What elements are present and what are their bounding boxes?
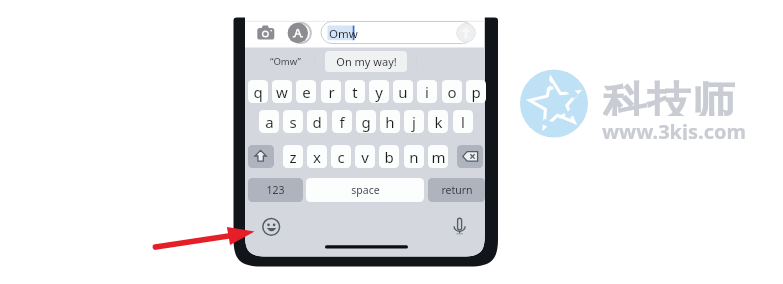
staticText: m [431, 147, 446, 167]
staticText: h [385, 112, 395, 132]
staticText: q [253, 82, 263, 102]
button[interactable]: h [380, 110, 400, 133]
button[interactable]: 123 [248, 178, 303, 202]
button[interactable]: o [442, 80, 462, 103]
button[interactable]: q [248, 80, 268, 103]
button[interactable]: Camera [257, 25, 275, 40]
staticText: www.3kjs.com [602, 118, 746, 140]
staticText: n [409, 147, 419, 167]
button[interactable]: s [283, 110, 303, 133]
button[interactable]: a [259, 110, 279, 133]
staticText: i [425, 82, 429, 102]
staticText: f [339, 112, 345, 132]
staticText: w [276, 82, 288, 102]
button[interactable]: f [332, 110, 352, 133]
button[interactable]: l [453, 110, 473, 133]
button[interactable]: y [369, 80, 389, 103]
button[interactable]: n [404, 145, 424, 168]
button[interactable]: u [393, 80, 413, 103]
staticText: u [398, 82, 408, 102]
staticText: d [312, 112, 322, 132]
staticText: s [289, 112, 297, 132]
button[interactable]: m [428, 145, 448, 168]
staticText: On my way! [336, 54, 397, 69]
staticText: e [302, 82, 311, 102]
button[interactable]: j [404, 110, 424, 133]
button[interactable]: On my way! [325, 51, 407, 72]
staticText: l [461, 112, 465, 132]
button[interactable]: space [306, 178, 424, 202]
button[interactable]: Emoji keyboard [262, 218, 280, 236]
button[interactable]: i [417, 80, 437, 103]
staticText: z [289, 147, 297, 167]
button[interactable]: Apps [288, 23, 308, 43]
staticText: k [434, 112, 443, 132]
button[interactable]: g [356, 110, 376, 133]
button[interactable]: x [307, 145, 327, 168]
staticText: return [441, 183, 473, 197]
button[interactable]: Backspace [457, 145, 483, 168]
button[interactable]: k [428, 110, 448, 133]
button[interactable]: r [321, 80, 341, 103]
staticText: v [361, 147, 369, 167]
button[interactable]: d [307, 110, 327, 133]
staticText: p [471, 82, 481, 102]
staticText: 科技师 [603, 76, 735, 116]
staticText: o [447, 82, 457, 102]
button[interactable]: c [331, 145, 351, 168]
staticText: x [313, 147, 321, 167]
staticText: c [337, 147, 345, 167]
button[interactable]: w [272, 80, 292, 103]
button[interactable]: z [283, 145, 303, 168]
button[interactable]: Shift [248, 145, 274, 168]
button[interactable]: Dictation [451, 215, 469, 235]
button[interactable]: e [296, 80, 316, 103]
staticText: “Omw” [270, 55, 301, 68]
staticText: 123 [266, 183, 285, 197]
button[interactable]: t [345, 80, 365, 103]
staticText: b [384, 147, 394, 167]
staticText: space [351, 183, 380, 197]
button[interactable]: return [428, 178, 485, 202]
button[interactable]: “Omw” [265, 51, 305, 72]
staticText: r [328, 82, 335, 102]
staticText: Omw [329, 26, 358, 42]
staticText: y [375, 82, 383, 102]
button[interactable]: Send [457, 24, 476, 43]
staticText: t [352, 82, 358, 102]
button[interactable]: b [379, 145, 399, 168]
staticText: j [412, 112, 416, 132]
button[interactable]: Message text field [321, 22, 474, 44]
button[interactable]: v [355, 145, 375, 168]
button[interactable]: p [466, 80, 486, 103]
staticText: a [265, 112, 274, 132]
staticText: g [361, 112, 371, 132]
